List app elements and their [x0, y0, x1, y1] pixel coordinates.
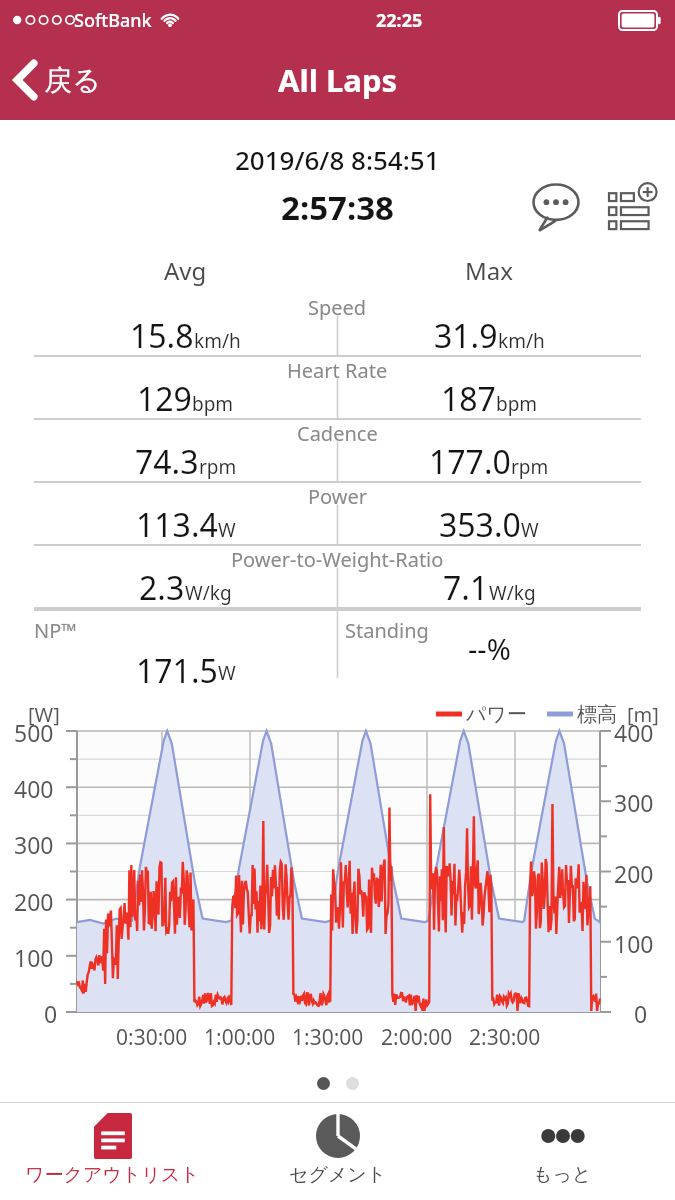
staticText: W — [218, 517, 236, 543]
staticText: 31.9 — [434, 314, 498, 357]
staticText: 500 — [14, 717, 54, 748]
staticText: 177.0 — [429, 440, 511, 483]
staticText: 300 — [14, 829, 54, 860]
staticText: 200 — [14, 886, 54, 917]
staticText: 1:00:00 — [204, 1023, 276, 1052]
staticText: W/kg — [185, 580, 232, 606]
staticText: Power-to-Weight-Ratio — [231, 546, 444, 573]
button[interactable]: もっと — [450, 1103, 675, 1200]
staticText: Speed — [308, 294, 367, 321]
staticText: 2019/6/8 8:54:51 — [235, 142, 440, 177]
staticText: 187 — [441, 377, 496, 420]
staticText: 1:30:00 — [292, 1023, 364, 1052]
staticText: 2:57:38 — [281, 185, 394, 230]
staticText: bpm — [496, 391, 538, 417]
staticText: もっと — [533, 1163, 592, 1187]
staticText: 400 — [14, 773, 54, 804]
staticText: rpm — [199, 454, 237, 480]
staticText: 353.0 — [439, 503, 521, 546]
staticText: 171.5 — [136, 649, 218, 689]
staticText: 2:00:00 — [381, 1023, 453, 1052]
staticText: 15.8 — [130, 314, 194, 357]
button[interactable]: ワークアウトリスト — [0, 1103, 225, 1200]
staticText: セグメント — [289, 1163, 387, 1187]
staticText: rpm — [511, 454, 549, 480]
staticText: Avg — [164, 254, 207, 287]
button[interactable]: セグメント — [225, 1103, 450, 1200]
button[interactable]: Power-to-Weight-Ratio — [34, 546, 641, 609]
button[interactable]: Power — [34, 483, 641, 546]
button[interactable]: Speed — [34, 294, 641, 357]
staticText: km/h — [498, 328, 545, 354]
staticText: 0 — [44, 998, 58, 1029]
staticText: W — [218, 660, 236, 686]
button[interactable]: Cadence — [34, 420, 641, 483]
button[interactable]: Heart Rate — [34, 357, 641, 420]
button[interactable]: Edit laps — [603, 178, 661, 236]
staticText: パワー — [466, 702, 527, 727]
staticText: bpm — [192, 391, 234, 417]
staticText: NP™ — [34, 617, 77, 644]
staticText: --% — [468, 629, 511, 668]
staticText: 標高 — [577, 702, 617, 727]
staticText: 200 — [614, 858, 654, 889]
staticText: 100 — [14, 942, 54, 973]
staticText: Max — [465, 254, 513, 287]
staticText: [W] — [28, 701, 60, 728]
button[interactable]: NP™ — [34, 609, 641, 689]
staticText: 戻る — [44, 63, 101, 98]
staticText: 7.1 — [443, 566, 489, 609]
staticText: 2.3 — [139, 566, 185, 609]
staticText: 0 — [634, 998, 648, 1029]
button[interactable]: Comments — [527, 178, 585, 236]
staticText: km/h — [194, 328, 241, 354]
button[interactable]: 戻る — [6, 53, 109, 107]
staticText: 300 — [614, 787, 654, 818]
staticText: SoftBank — [74, 8, 152, 33]
staticText: 22:25 — [376, 8, 423, 33]
staticText: Power — [308, 483, 368, 510]
staticText: Heart Rate — [287, 357, 388, 384]
staticText: Cadence — [297, 420, 378, 447]
staticText: [m] — [627, 701, 659, 728]
staticText: 113.4 — [136, 503, 218, 546]
staticText: All Laps — [278, 59, 398, 101]
staticText: ワークアウトリスト — [25, 1163, 200, 1187]
staticText: 129 — [137, 377, 192, 420]
staticText: W/kg — [489, 580, 536, 606]
staticText: Standing — [345, 617, 429, 644]
staticText: 0:30:00 — [116, 1023, 188, 1052]
staticText: 2:30:00 — [469, 1023, 541, 1052]
staticText: 400 — [614, 717, 654, 748]
staticText: 74.3 — [135, 440, 199, 483]
staticText: 100 — [614, 928, 654, 959]
staticText: W — [521, 517, 539, 543]
